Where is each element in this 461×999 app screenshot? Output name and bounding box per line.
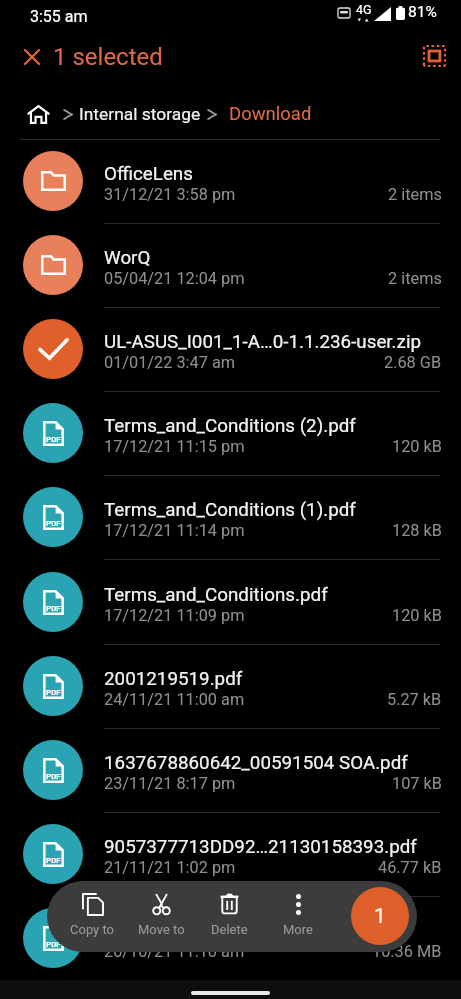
staticText: 17/12/21 11:09 pm [104, 606, 245, 625]
button[interactable]: More [264, 891, 332, 937]
staticText: 01/01/22 3:47 am [104, 353, 236, 372]
staticText: Copy to [70, 922, 115, 937]
staticText: 31/12/21 3:58 pm [104, 185, 236, 204]
staticText: 20/10/21 11:10 am [104, 942, 245, 961]
staticText: UL-ASUS_I001_1-A…0-1.1.236-user.zip [104, 331, 440, 353]
staticText: 107 kB [392, 774, 442, 793]
staticText: 120 kB [392, 437, 442, 456]
button[interactable]: PDF [0, 645, 461, 729]
staticText: Delete [211, 922, 248, 937]
staticText: 128 kB [392, 521, 442, 540]
button[interactable]: PDF [0, 561, 461, 645]
staticText: Terms_and_Conditions.pdf [104, 584, 440, 606]
staticText: 4G [356, 2, 372, 17]
button[interactable]: PDF [0, 392, 461, 476]
staticText: 05/04/21 12:04 pm [104, 269, 245, 288]
button[interactable]: PDF [0, 729, 461, 813]
staticText: Terms_and_Conditions (1).pdf [104, 499, 440, 521]
staticText: OfficeLens [104, 163, 440, 185]
staticText: PDF [46, 435, 61, 444]
staticText: PDF [46, 688, 61, 697]
staticText: 17/12/21 11:14 pm [104, 521, 245, 540]
button[interactable]: 1 [351, 887, 409, 945]
staticText: 2 items [388, 269, 442, 288]
staticText: 1637678860642_00591504 SOA.pdf [104, 752, 440, 774]
staticText: 5.27 kB [387, 690, 442, 709]
button[interactable]: OfficeLens [0, 140, 461, 224]
staticText: 1 [374, 904, 386, 929]
button[interactable]: Download [229, 103, 312, 125]
staticText: PDF [46, 604, 61, 613]
staticText: 81% [408, 3, 437, 21]
button[interactable]: PDF [0, 897, 461, 981]
staticText: 2 items [388, 185, 442, 204]
staticText: 9057377713DD92…21130158393.pdf [104, 836, 440, 858]
button[interactable]: Home [28, 105, 49, 124]
staticText: WorQ [104, 247, 440, 269]
staticText: 17/12/21 11:15 pm [104, 437, 245, 456]
staticText: More [283, 922, 313, 937]
staticText: Move to [138, 922, 185, 937]
button[interactable]: WorQ [0, 224, 461, 308]
button[interactable]: Delete [195, 891, 263, 937]
button[interactable]: PDF [0, 476, 461, 560]
staticText: 3:55 am [30, 7, 88, 26]
staticText: 21/11/21 1:02 pm [104, 858, 236, 877]
staticText: PDF [46, 856, 61, 865]
button[interactable]: Move to [127, 891, 195, 937]
button[interactable]: 1 selected [10, 33, 163, 80]
staticText: 23/11/21 8:17 pm [104, 774, 236, 793]
button[interactable]: Copy to [58, 891, 126, 937]
staticText: 46.77 kB [378, 858, 442, 877]
staticText: PDF [46, 772, 61, 781]
staticText: 120 kB [392, 606, 442, 625]
button[interactable]: Internal storage [79, 104, 201, 124]
staticText: 1 selected [53, 43, 163, 71]
staticText: 2001219519.pdf [104, 668, 440, 690]
staticText: PDF [46, 519, 61, 528]
staticText: 24/11/21 11:00 am [104, 690, 245, 709]
staticText: 2.68 GB [384, 353, 442, 372]
button[interactable]: UL-ASUS_I001_1-A…0-1.1.236-user.zip [0, 308, 461, 392]
button[interactable]: Select all [412, 34, 456, 78]
staticText: 10.36 MB [372, 942, 442, 961]
staticText: PDF [46, 940, 61, 949]
button[interactable]: PDF [0, 813, 461, 897]
staticText: Terms_and_Conditions (2).pdf [104, 415, 440, 437]
staticText: 20201021_111016.mp4 [104, 920, 440, 942]
